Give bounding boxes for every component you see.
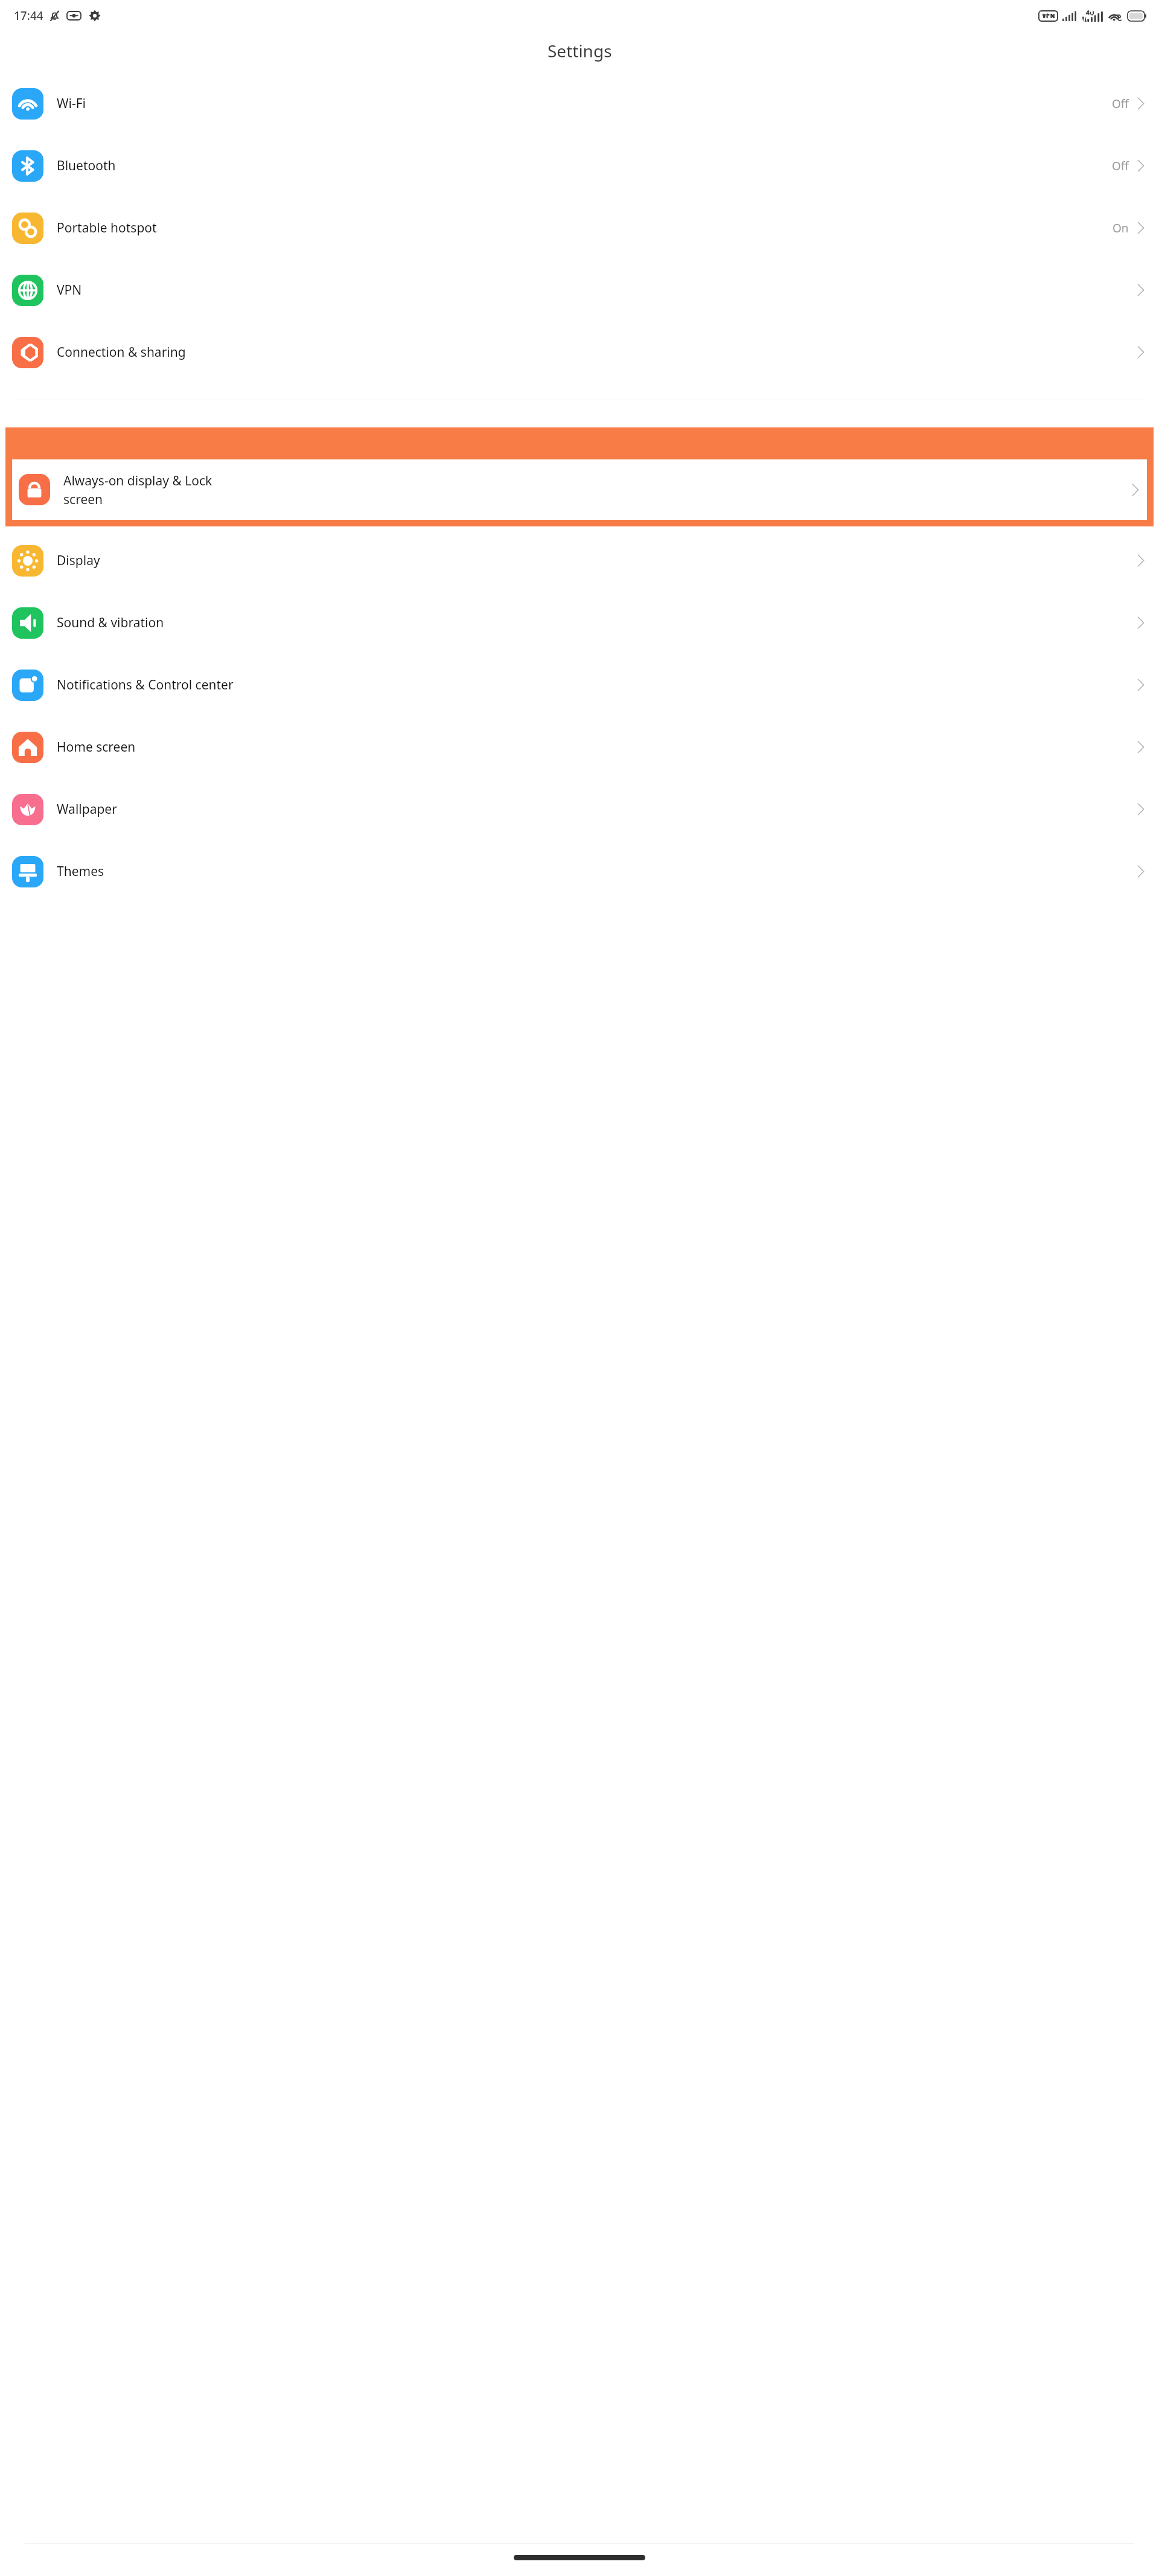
button[interactable]: Themes — [0, 840, 1159, 903]
button[interactable]: Notifications & Control center — [0, 654, 1159, 716]
button[interactable]: Display — [0, 529, 1159, 592]
staticText: Off — [1112, 158, 1129, 174]
other: Open — [1137, 554, 1145, 567]
other: Open — [1137, 222, 1145, 234]
staticText: Notifications & Control center — [57, 676, 234, 694]
other: Open — [1137, 616, 1145, 629]
staticText: Connection & sharing — [57, 344, 186, 361]
staticText: Bluetooth — [57, 157, 116, 174]
staticText: Wallpaper — [57, 801, 117, 818]
button[interactable]: Bluetooth — [0, 135, 1159, 197]
staticText: Themes — [57, 863, 104, 880]
other: Open — [1137, 97, 1145, 110]
staticText: Off — [1112, 96, 1129, 112]
staticText: Portable hotspot — [57, 219, 157, 237]
staticText: 17:44 — [14, 8, 43, 24]
other: Open — [1137, 679, 1145, 691]
staticText: Always-on display & Lock screen — [63, 472, 212, 508]
staticText: On — [1113, 220, 1129, 236]
button[interactable]: Home screen — [0, 716, 1159, 778]
other: Open — [1137, 741, 1145, 753]
other: Open — [1137, 803, 1145, 816]
staticText: VPN — [57, 281, 82, 299]
button[interactable]: Connection & sharing — [0, 321, 1159, 383]
button[interactable]: Always-on display & Lock screen — [12, 459, 1147, 520]
staticText: Wi-Fi — [57, 95, 86, 112]
button[interactable]: Portable hotspot — [0, 197, 1159, 259]
button[interactable]: VPN — [0, 259, 1159, 321]
other: Open — [1137, 346, 1145, 359]
other: Open — [1137, 865, 1145, 878]
other: Open — [1132, 484, 1139, 496]
other: Open — [1137, 159, 1145, 172]
button[interactable]: Wallpaper — [0, 778, 1159, 840]
button[interactable]: Sound & vibration — [0, 592, 1159, 654]
staticText: Home screen — [57, 738, 136, 756]
staticText: Settings — [548, 39, 612, 62]
button[interactable]: Wi-Fi — [0, 72, 1159, 135]
staticText: Display — [57, 552, 100, 569]
staticText: Sound & vibration — [57, 614, 164, 631]
other: Open — [1137, 284, 1145, 296]
